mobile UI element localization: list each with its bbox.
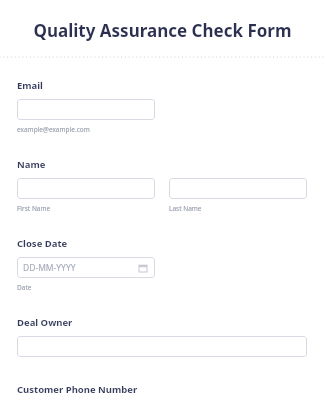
button[interactable] — [17, 178, 155, 199]
button[interactable]: DD-MM-YYYY — [17, 257, 155, 278]
staticText: Last Name — [169, 204, 202, 213]
staticText: DD-MM-YYYY — [23, 262, 76, 274]
staticText: Name — [17, 158, 46, 171]
button[interactable] — [17, 99, 155, 120]
staticText: example@example.com — [17, 125, 90, 134]
staticText: Customer Phone Number — [17, 383, 138, 396]
button[interactable] — [169, 178, 307, 199]
staticText: First Name — [17, 204, 51, 213]
staticText: Close Date — [17, 237, 68, 250]
staticText: Date — [17, 283, 32, 292]
staticText: Deal Owner — [17, 316, 73, 329]
button[interactable] — [17, 336, 307, 357]
button[interactable]: Open calendar — [137, 262, 149, 274]
staticText: Email — [17, 79, 43, 92]
staticText: Quality Assurance Check Form — [33, 19, 292, 42]
